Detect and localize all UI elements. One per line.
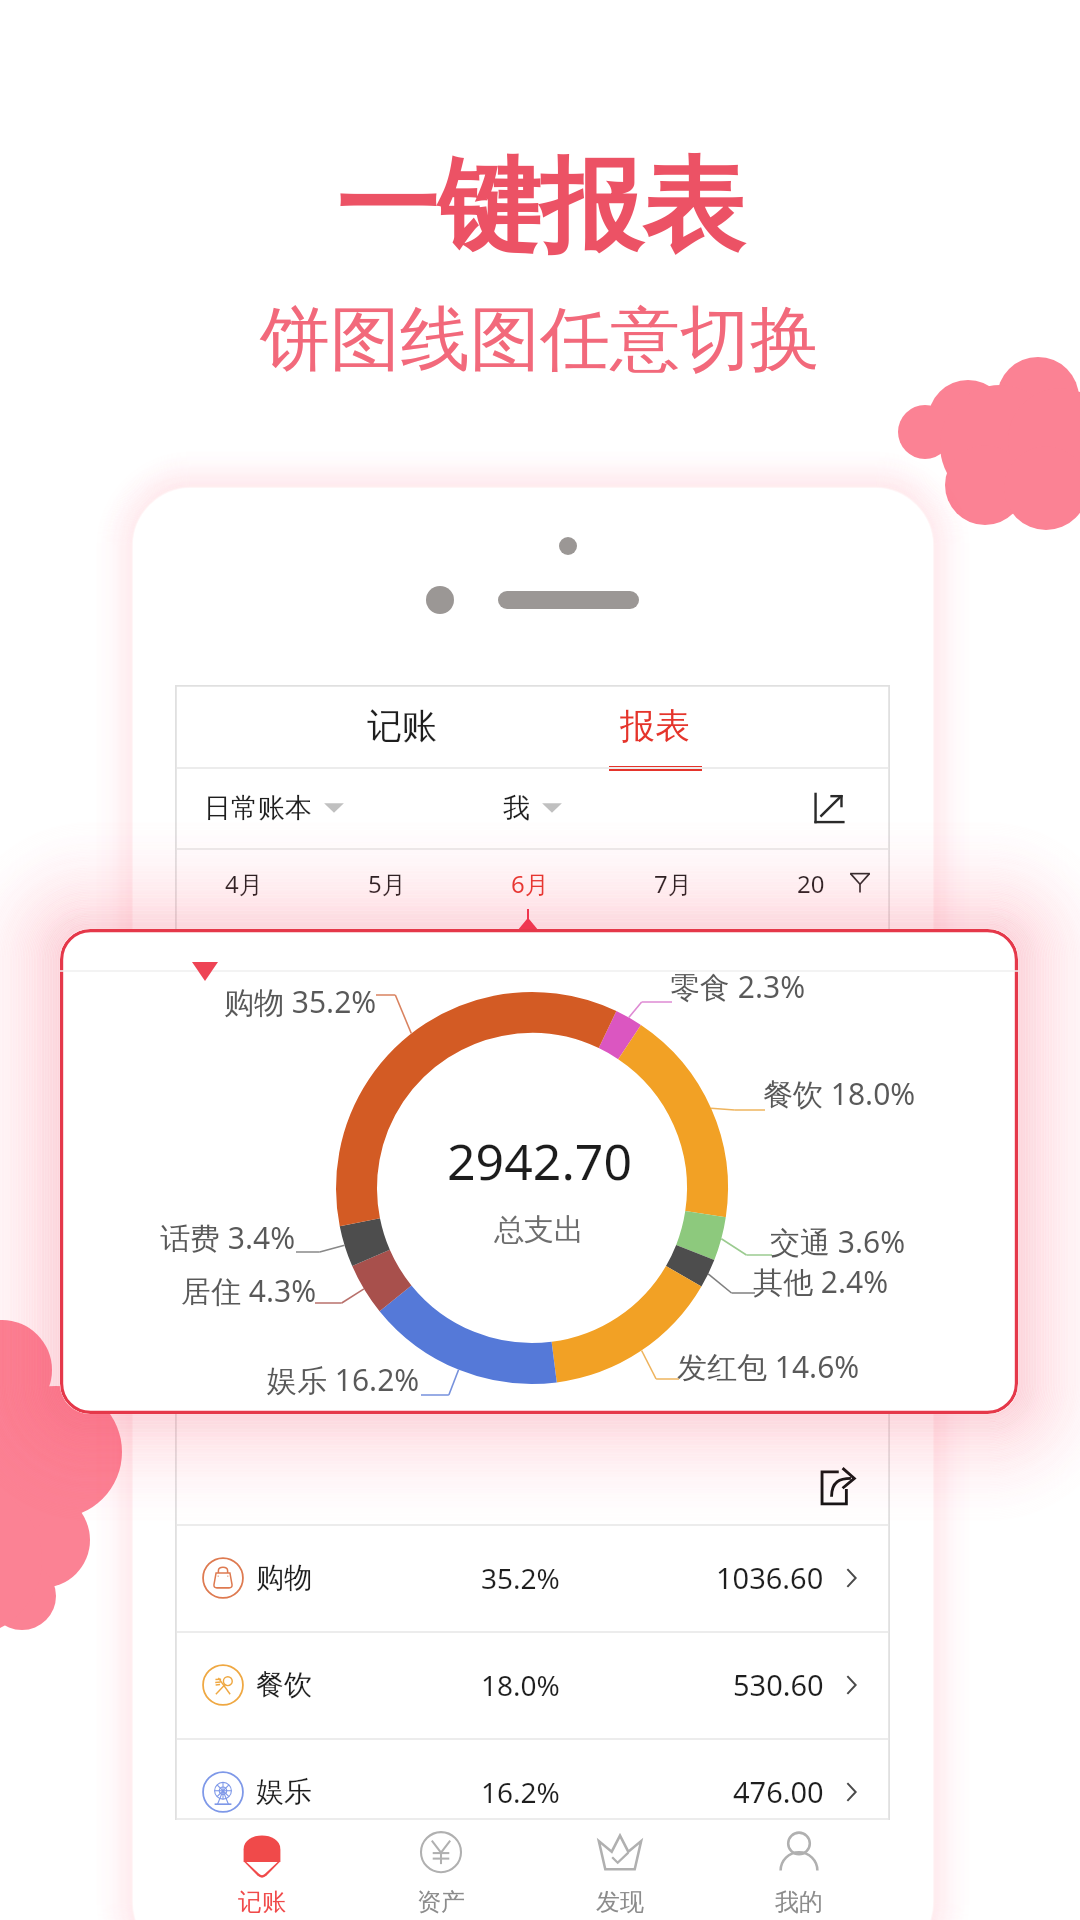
staticText: 娱乐: [256, 1774, 312, 1809]
staticText: 6月: [511, 867, 549, 900]
staticText: 餐饮: [256, 1667, 312, 1702]
staticText: 餐饮 18.0%: [763, 1073, 916, 1114]
button[interactable]: Trend chart: [791, 767, 867, 848]
staticText: 1036.60: [716, 1558, 824, 1597]
staticText: 16.2%: [481, 1773, 560, 1811]
staticText: 其他 2.4%: [753, 1261, 889, 1302]
staticText: 2021年: [797, 867, 829, 900]
staticText: 2942.70: [447, 1127, 632, 1195]
button[interactable]: 购物: [177, 1524, 888, 1631]
staticText: 发现: [596, 1887, 644, 1917]
staticText: 4月: [225, 867, 263, 900]
button[interactable]: 5月: [329, 848, 445, 918]
staticText: 居住 4.3%: [181, 1270, 317, 1311]
staticText: 娱乐 16.2%: [267, 1359, 420, 1400]
staticText: 资产: [417, 1887, 465, 1917]
button[interactable]: 日常账本: [204, 767, 345, 848]
staticText: 交通 3.6%: [770, 1221, 906, 1262]
button[interactable]: 记账: [342, 685, 462, 767]
staticText: 总支出: [494, 1211, 584, 1249]
staticText: 零食 2.3%: [670, 966, 806, 1007]
button[interactable]: 4月: [186, 848, 302, 918]
button[interactable]: 6月: [472, 848, 588, 918]
button[interactable]: 7月: [615, 848, 731, 918]
staticText: 饼图线图任意切换: [260, 296, 820, 384]
staticText: 购物 35.2%: [224, 981, 377, 1022]
button[interactable]: 我的: [719, 1820, 879, 1920]
staticText: 5月: [368, 867, 406, 900]
button[interactable]: 资产: [361, 1820, 521, 1920]
button[interactable]: 报表: [595, 685, 715, 767]
staticText: 35.2%: [481, 1559, 560, 1597]
staticText: 报表: [620, 704, 690, 748]
staticText: 记账: [367, 704, 437, 748]
button[interactable]: 2021年: [797, 848, 829, 918]
staticText: 购物: [256, 1560, 312, 1595]
button[interactable]: 发现: [540, 1820, 700, 1920]
staticText: 一键报表: [336, 143, 744, 271]
button[interactable]: Filter: [829, 848, 890, 918]
button[interactable]: Share: [805, 1455, 871, 1517]
staticText: 530.60: [733, 1665, 824, 1704]
staticText: 我: [503, 791, 530, 825]
staticText: 7月: [654, 867, 692, 900]
button[interactable]: 我: [503, 767, 563, 848]
staticText: 18.0%: [481, 1666, 560, 1704]
button[interactable]: 娱乐: [177, 1738, 888, 1845]
staticText: 话费 3.4%: [160, 1217, 296, 1258]
button[interactable]: 记账: [182, 1820, 342, 1920]
staticText: 发红包 14.6%: [677, 1346, 860, 1387]
staticText: 记账: [238, 1887, 286, 1917]
staticText: 日常账本: [204, 791, 312, 825]
staticText: 476.00: [733, 1772, 824, 1811]
staticText: 我的: [775, 1887, 823, 1917]
button[interactable]: 餐饮: [177, 1631, 888, 1738]
